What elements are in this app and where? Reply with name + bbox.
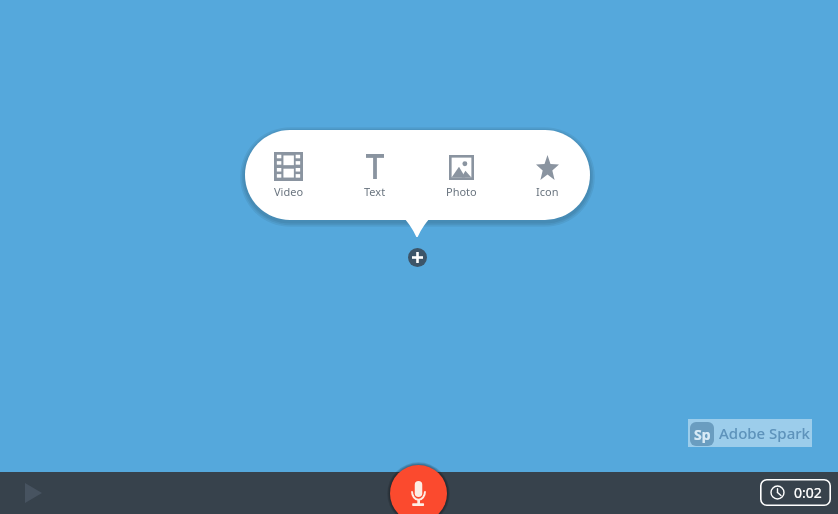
staticText: 0:02	[794, 483, 822, 502]
staticText: Photo	[446, 184, 477, 199]
button[interactable]: Photo	[418, 130, 504, 220]
button[interactable]: Record	[390, 465, 447, 514]
staticText: Adobe Spark	[719, 423, 810, 443]
button[interactable]: Add	[408, 248, 427, 267]
button[interactable]: Video	[245, 130, 332, 220]
button[interactable]: Adobe Spark	[688, 419, 812, 447]
staticText: Icon	[536, 184, 559, 199]
staticText: Video	[274, 184, 304, 199]
button[interactable]: Play	[18, 477, 49, 508]
button[interactable]: Text	[332, 130, 418, 220]
button[interactable]: Recording time 0:02	[760, 479, 831, 506]
staticText: Sp	[694, 425, 711, 444]
staticText: Text	[364, 184, 386, 199]
button[interactable]: Icon	[504, 130, 590, 220]
